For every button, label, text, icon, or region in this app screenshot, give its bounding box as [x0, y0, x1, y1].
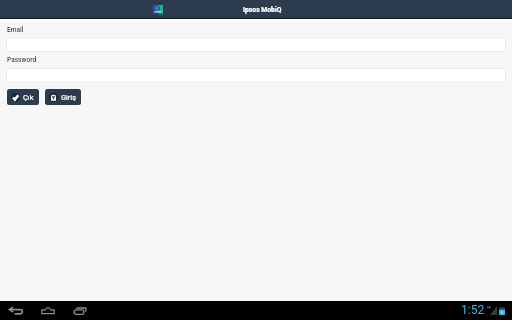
staticText: Giriş	[61, 93, 76, 102]
button[interactable]: Giriş	[45, 89, 81, 105]
button[interactable]: Back	[3, 301, 29, 320]
staticText: 1:52	[461, 303, 485, 317]
button[interactable]: Çık	[7, 89, 39, 105]
staticText: Email	[7, 26, 24, 34]
staticText: Password	[7, 56, 37, 64]
button[interactable]	[6, 68, 506, 83]
staticText: Çık	[23, 93, 34, 102]
button[interactable]: Home	[35, 301, 61, 320]
staticText: Ipsos MobiQ	[243, 6, 282, 14]
button[interactable]	[6, 37, 506, 52]
button[interactable]: Recents	[67, 301, 93, 320]
